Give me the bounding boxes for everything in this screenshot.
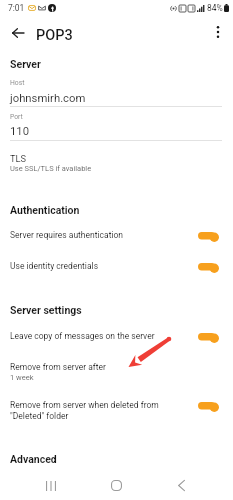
staticText: "Deleted" folder [10, 411, 69, 421]
staticText: Server settings [10, 304, 82, 316]
button[interactable]: Home [99, 471, 133, 500]
staticText: Server [10, 58, 41, 70]
staticText: Server requires authentication [10, 230, 124, 240]
staticText: 110 [10, 125, 30, 138]
button[interactable]: Server settings [0, 302, 233, 316]
staticText: Authentication [10, 204, 80, 216]
staticText: Advanced [10, 453, 57, 465]
button[interactable]: Authentication [0, 202, 233, 216]
button[interactable]: Toggle on [194, 329, 223, 346]
staticText: Host [10, 79, 25, 87]
button[interactable]: Toggle on [194, 259, 223, 276]
button[interactable]: Back [164, 471, 198, 500]
button[interactable]: More options [207, 21, 229, 43]
button[interactable]: Toggle on [194, 228, 223, 245]
button[interactable]: Toggle on [194, 398, 223, 415]
staticText: 84% [207, 3, 223, 13]
staticText: Remove from server when deleted from [10, 400, 159, 410]
staticText: johnsmirh.com [10, 92, 86, 105]
staticText: Use SSL/TLS if available [10, 164, 92, 173]
staticText: Remove from server after [10, 362, 106, 372]
staticText: Port [10, 113, 23, 121]
staticText: Use identity credentials [10, 261, 99, 271]
staticText: POP3 [36, 27, 73, 44]
staticText: 1 week [10, 373, 34, 382]
button[interactable]: Navigate up [6, 21, 29, 44]
button[interactable]: Recent apps [34, 471, 68, 500]
button[interactable]: Advanced [0, 451, 233, 465]
staticText: 7:01 [8, 3, 25, 13]
staticText: Leave copy of messages on the server [10, 331, 155, 341]
staticText: TLS [10, 153, 27, 164]
button[interactable]: Server [0, 56, 233, 70]
